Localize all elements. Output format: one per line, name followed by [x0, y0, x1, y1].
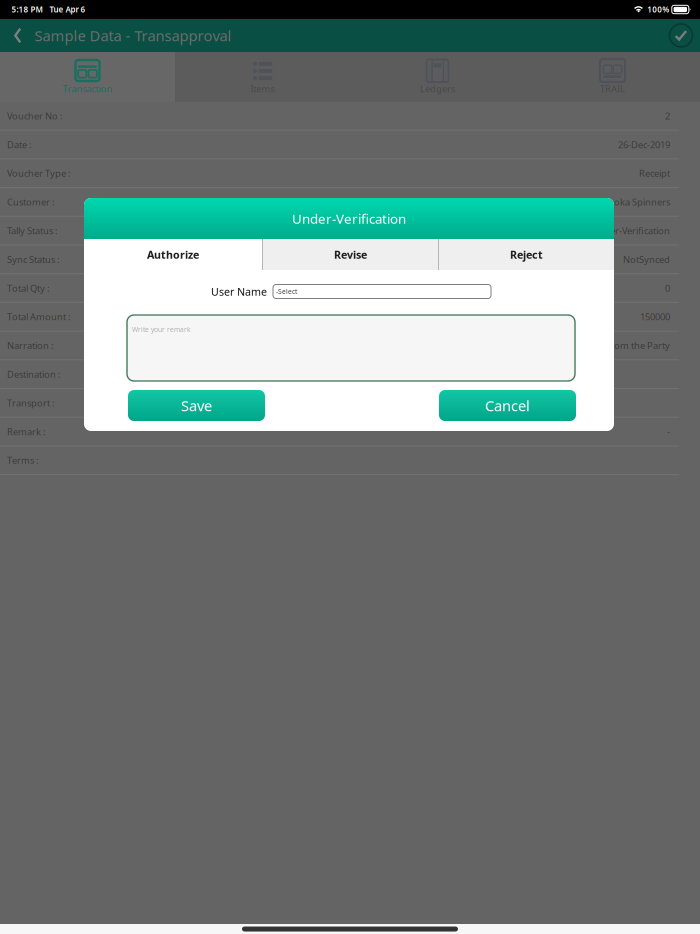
staticText: Under-Verification	[292, 210, 406, 227]
button[interactable]: Confirm	[663, 19, 699, 52]
button[interactable]: -Select	[273, 284, 491, 298]
staticText: Transport :	[7, 397, 55, 409]
staticText: Ledgers	[420, 82, 455, 95]
staticText: 0	[665, 282, 670, 294]
staticText: Write your remark	[132, 325, 191, 334]
staticText: 2	[665, 110, 670, 122]
staticText: Tue Apr 6	[49, 4, 85, 15]
staticText: -Select	[276, 287, 297, 296]
staticText: TRAIL	[600, 82, 625, 95]
button[interactable]: Cancel	[439, 390, 576, 421]
staticText: -	[667, 425, 670, 438]
staticText: Under-Verification	[591, 224, 670, 237]
staticText: Voucher Type :	[7, 167, 71, 179]
staticText: Destination :	[7, 368, 61, 380]
staticText: Transaction	[62, 82, 112, 95]
staticText: 150000	[640, 311, 670, 323]
staticText: NotSynced	[623, 253, 670, 266]
staticText: Narration :	[7, 339, 54, 352]
staticText: Date :	[7, 138, 32, 151]
staticText: Remark :	[7, 425, 46, 438]
staticText: Customer :	[7, 196, 55, 208]
staticText: Tally Status :	[7, 224, 58, 237]
staticText: Voucher No :	[7, 110, 63, 122]
staticText: Receipt	[639, 167, 670, 179]
button[interactable]: Back	[0, 19, 34, 52]
staticText: Sync Status :	[7, 253, 60, 266]
button[interactable]: Save	[128, 390, 265, 421]
staticText: 100%	[647, 4, 669, 15]
button[interactable]: Authorize	[84, 239, 262, 270]
staticText: Ashoka Spinners	[598, 196, 670, 208]
staticText: Received from the Party	[567, 339, 670, 352]
staticText: Cancel	[485, 396, 530, 415]
button[interactable]: Revise	[263, 239, 438, 270]
staticText: User Name	[211, 284, 267, 299]
staticText: Revise	[334, 247, 367, 262]
staticText: Sample Data - Transapproval	[34, 26, 231, 45]
button[interactable]: Reject	[439, 239, 614, 270]
staticText: Terms :	[7, 454, 39, 466]
staticText: Authorize	[147, 247, 199, 262]
staticText: Total Qty :	[7, 282, 50, 294]
staticText: 26-Dec-2019	[618, 138, 670, 151]
staticText: Reject	[510, 247, 543, 262]
staticText: 5:18 PM	[11, 4, 42, 15]
staticText: Save	[181, 396, 212, 415]
staticText: Total Amount :	[7, 311, 71, 323]
button[interactable]: Transaction	[0, 52, 175, 102]
staticText: Items	[250, 82, 274, 95]
